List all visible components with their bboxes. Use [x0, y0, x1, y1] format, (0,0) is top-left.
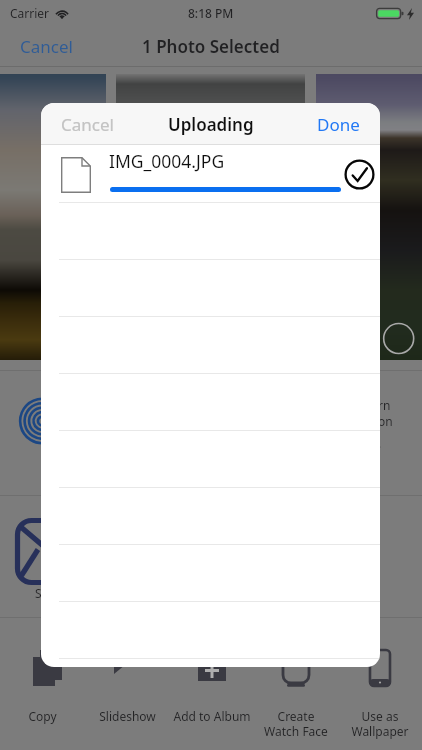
button[interactable]: AirDrop	[6, 385, 74, 471]
staticText: .	[378, 435, 382, 451]
staticText: So	[35, 585, 49, 601]
button[interactable]: Done	[297, 103, 380, 145]
button[interactable]: Cancel	[41, 103, 134, 145]
staticText: Carrier	[10, 5, 50, 21]
button[interactable]: Copy	[0, 648, 85, 724]
button[interactable]: Use as Wallpaper	[338, 648, 422, 739]
staticText: 1 Photo Selected	[142, 35, 280, 58]
staticText: Copy	[28, 708, 57, 724]
button[interactable]	[116, 74, 305, 360]
staticText: Slideshow	[99, 708, 156, 724]
staticText: Done	[317, 113, 360, 135]
button[interactable]	[316, 74, 422, 360]
button[interactable]: Create Watch Face	[254, 648, 338, 739]
staticText: Uploading	[168, 113, 254, 136]
staticText: IMG_0004.JPG	[109, 149, 225, 173]
staticText: on	[378, 413, 393, 429]
staticText: Cancel	[20, 35, 73, 58]
button[interactable]: Slideshow	[85, 648, 170, 724]
staticText: Add to Album	[173, 708, 251, 724]
button[interactable]: Add to Album	[170, 648, 254, 724]
staticText: rn	[378, 397, 391, 413]
staticText: Cancel	[61, 113, 114, 135]
staticText: 8:18 PM	[188, 5, 234, 21]
button[interactable]: Share via Mail	[5, 509, 81, 605]
button[interactable]: Cancel	[0, 26, 93, 67]
staticText: Use as Wallpaper	[351, 708, 409, 739]
button[interactable]	[0, 74, 106, 360]
staticText: Create Watch Face	[264, 708, 328, 739]
